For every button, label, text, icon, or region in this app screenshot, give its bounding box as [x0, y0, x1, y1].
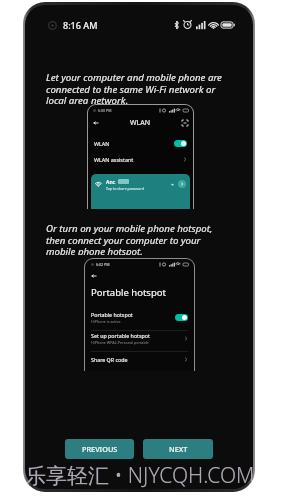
staticText: Set up portable hotspot	[91, 332, 150, 339]
button[interactable]: WLAN assistant	[94, 151, 187, 168]
button[interactable]	[174, 140, 187, 147]
staticText: Let your computer and mobile phone are c…	[46, 71, 222, 104]
other: Back	[91, 273, 97, 279]
staticText: Portable hotspot	[91, 311, 133, 318]
staticText: PREVIOUS	[82, 444, 118, 454]
button[interactable]: Portable hotspot	[91, 310, 188, 325]
button[interactable]: Share QR code	[91, 352, 188, 366]
staticText: Anc	[106, 178, 116, 185]
staticText: Portable hotspot	[91, 286, 166, 299]
staticText: HiPhone is active	[91, 319, 121, 324]
staticText: 6:02 PM	[96, 262, 110, 267]
staticText: 6:00 PM	[98, 108, 112, 113]
button[interactable]: Set up portable hotspot	[91, 331, 188, 346]
other: Back	[93, 120, 99, 126]
button[interactable]: WLAN	[94, 135, 187, 151]
staticText: WLAN	[94, 140, 110, 147]
staticText: HiPhone WPA2-Personal portable	[91, 340, 149, 345]
staticText: WLAN	[130, 118, 150, 128]
button[interactable]	[175, 314, 188, 321]
staticText: WLAN assistant	[94, 156, 134, 163]
staticText: Or turn on your mobile phone hotspot, th…	[46, 222, 213, 255]
staticText: Share QR code	[91, 356, 128, 363]
staticText: 8:16 AM	[63, 19, 98, 31]
button[interactable]: Anc	[91, 174, 190, 209]
other: Scan	[182, 120, 188, 126]
staticText: NEXT	[169, 444, 188, 454]
button[interactable]: PREVIOUS	[65, 439, 134, 459]
button[interactable]: NEXT	[143, 439, 213, 459]
staticText: Tap to share password	[106, 186, 144, 191]
staticText: 乐享轻汇 • NJYCQH.COM	[25, 461, 255, 490]
